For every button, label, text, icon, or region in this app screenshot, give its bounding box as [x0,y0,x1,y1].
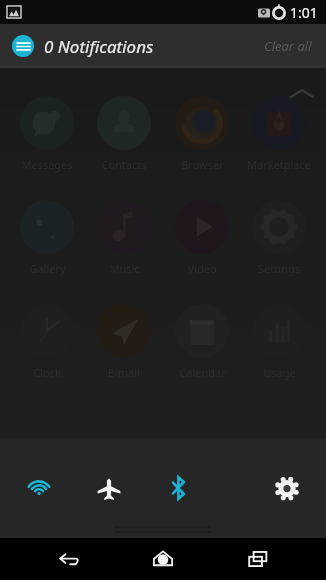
button[interactable]: Marketplace [242,96,316,172]
button[interactable]: Home [137,538,189,580]
button[interactable]: E-mail [87,304,161,380]
button[interactable]: Notifications [12,35,34,57]
button[interactable]: Recent apps [232,538,284,580]
button[interactable]: Video [165,200,239,276]
button[interactable]: Airplane mode [74,438,144,538]
button[interactable]: Bluetooth [144,438,214,538]
button[interactable]: Browser [165,96,239,172]
button[interactable]: Back [43,538,95,580]
staticText: Contacts [101,157,147,172]
button[interactable]: Clear all [260,31,316,61]
button[interactable]: Contacts [87,96,161,172]
button[interactable]: Wi-Fi [4,438,74,538]
button[interactable]: Settings [252,438,322,538]
staticText: Settings [258,261,300,276]
staticText: 1:01 [290,3,318,22]
staticText: Messages [21,157,73,172]
staticText: Clock [33,365,61,380]
button[interactable]: Gallery [10,200,84,276]
staticText: Music [109,261,140,276]
staticText: 0 Notifications [44,35,154,58]
button[interactable]: Messages [10,96,84,172]
staticText: Calendar [179,365,226,380]
staticText: Browser [181,157,224,172]
staticText: Gallery [29,261,66,276]
button[interactable]: Settings [242,200,316,276]
staticText: Usage [263,365,296,380]
staticText: E-mail [108,365,140,380]
staticText: Clear all [264,37,312,55]
staticText: Video [187,261,217,276]
staticText: Marketplace [247,157,311,172]
button[interactable]: Calendar [165,304,239,380]
